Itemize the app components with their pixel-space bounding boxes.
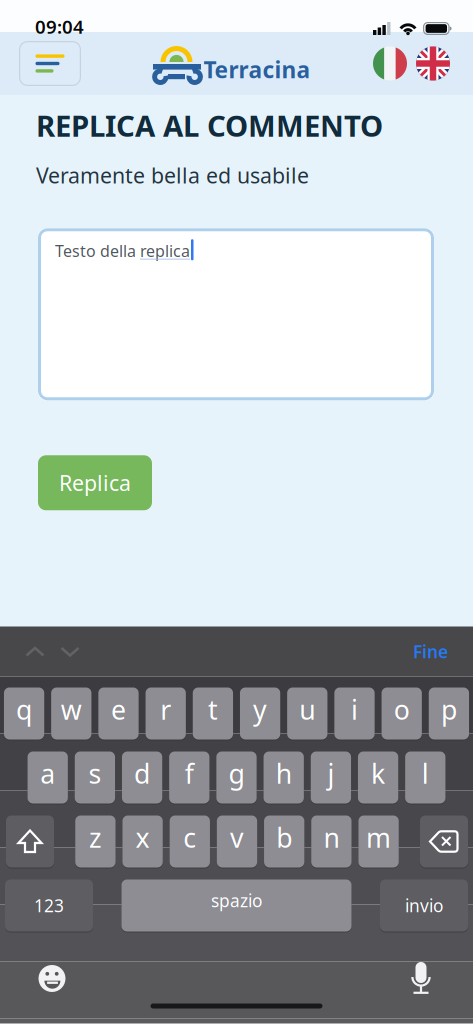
button[interactable]: q xyxy=(4,687,44,739)
button[interactable] xyxy=(38,964,66,992)
button[interactable] xyxy=(19,41,81,86)
staticText: s xyxy=(88,756,101,791)
button[interactable]: l xyxy=(405,751,445,803)
button[interactable]: invio xyxy=(380,879,468,931)
button[interactable]: n xyxy=(311,815,351,867)
staticText: w xyxy=(61,692,82,727)
staticText: o xyxy=(394,692,410,727)
staticText: 123 xyxy=(34,894,64,917)
button[interactable]: x xyxy=(122,815,163,867)
staticText: z xyxy=(89,820,102,855)
staticText: REPLICA AL COMMENTO xyxy=(36,106,383,145)
button[interactable]: y xyxy=(240,687,280,739)
button[interactable]: i xyxy=(334,687,375,739)
staticText: t xyxy=(208,692,218,727)
staticText: d xyxy=(134,756,150,791)
button[interactable]: j xyxy=(311,751,351,803)
button[interactable]: Testo della xyxy=(38,228,434,400)
staticText: spazio xyxy=(211,889,262,912)
button[interactable] xyxy=(60,646,80,656)
button[interactable]: f xyxy=(169,751,209,803)
button[interactable]: z xyxy=(75,815,115,867)
staticText: b xyxy=(276,820,292,855)
button[interactable]: t xyxy=(193,687,233,739)
button[interactable]: o xyxy=(381,687,422,739)
button[interactable] xyxy=(420,815,468,867)
staticText: c xyxy=(183,820,196,855)
staticText: Testo della xyxy=(55,240,140,261)
staticText: l xyxy=(422,756,429,791)
staticText: n xyxy=(323,820,339,855)
staticText: m xyxy=(366,820,391,855)
staticText: replica xyxy=(140,240,190,261)
staticText: i xyxy=(351,692,358,727)
button[interactable]: w xyxy=(51,687,91,739)
staticText: a xyxy=(40,756,55,791)
staticText: Replica xyxy=(59,469,131,497)
button[interactable] xyxy=(373,46,407,80)
staticText: p xyxy=(441,692,457,727)
staticText: v xyxy=(230,820,244,855)
button[interactable]: h xyxy=(263,751,304,803)
staticText: x xyxy=(136,820,150,855)
button[interactable]: s xyxy=(75,751,115,803)
button[interactable]: g xyxy=(216,751,257,803)
button[interactable]: k xyxy=(358,751,398,803)
button[interactable]: e xyxy=(98,687,139,739)
staticText: invio xyxy=(405,894,443,917)
staticText: Terracina xyxy=(203,54,310,84)
button[interactable]: a xyxy=(27,751,68,803)
button[interactable]: m xyxy=(358,815,399,867)
button[interactable]: v xyxy=(217,815,257,867)
staticText: f xyxy=(185,756,194,791)
staticText: q xyxy=(16,692,32,727)
staticText: k xyxy=(371,756,385,791)
button[interactable]: u xyxy=(287,687,327,739)
button[interactable]: c xyxy=(170,815,210,867)
staticText: 09:04 xyxy=(35,14,84,39)
staticText: e xyxy=(111,692,126,727)
button[interactable]: 123 xyxy=(5,879,93,931)
button[interactable]: d xyxy=(122,751,162,803)
staticText: r xyxy=(160,692,171,727)
staticText: g xyxy=(228,756,244,791)
button[interactable]: Replica xyxy=(38,455,152,510)
button[interactable]: r xyxy=(145,687,186,739)
button[interactable] xyxy=(411,961,431,995)
button[interactable]: p xyxy=(429,687,469,739)
button[interactable]: b xyxy=(264,815,304,867)
staticText: y xyxy=(253,692,267,727)
staticText: u xyxy=(299,692,315,727)
button[interactable] xyxy=(416,46,450,80)
staticText: Veramente bella ed usabile xyxy=(36,161,309,189)
button[interactable]: Fine xyxy=(413,640,448,663)
button[interactable]: spazio xyxy=(121,879,351,931)
staticText: h xyxy=(276,756,292,791)
staticText: j xyxy=(327,756,334,791)
button[interactable] xyxy=(25,646,45,656)
button[interactable] xyxy=(6,815,54,867)
staticText: Fine xyxy=(413,640,448,663)
